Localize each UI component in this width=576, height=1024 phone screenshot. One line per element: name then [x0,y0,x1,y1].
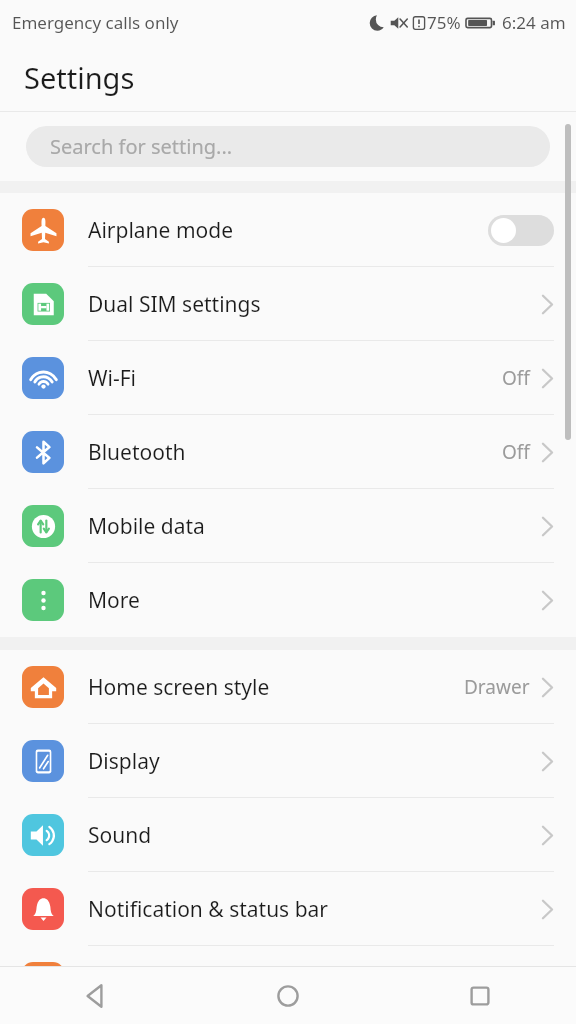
button[interactable]: Back [0,967,192,1024]
button[interactable]: Apps [0,946,576,1020]
staticText: Sound [88,821,541,850]
staticText: Emergency calls only [12,11,179,34]
staticText: Airplane mode [88,216,488,245]
button[interactable]: Home [192,967,384,1024]
button[interactable]: Dual SIM settings [0,267,576,341]
staticText: Wi-Fi [88,364,502,393]
staticText: More [88,586,541,615]
staticText: 6:24 am [502,11,566,34]
staticText: Mobile data [88,512,541,541]
button[interactable]: Mobile data [0,489,576,563]
button[interactable]: Notification & status bar [0,872,576,946]
button[interactable]: Search for setting... [26,126,550,167]
staticText: Dual SIM settings [88,290,541,319]
staticText: Settings [24,58,135,97]
staticText: Drawer [464,674,530,700]
button[interactable]: Bluetooth [0,415,576,489]
button[interactable]: Recent apps [384,967,576,1024]
staticText: Off [502,365,530,391]
button[interactable]: Airplane mode [0,193,576,267]
button[interactable]: Display [0,724,576,798]
staticText: Display [88,747,541,776]
button[interactable]: Wi-Fi [0,341,576,415]
staticText: Off [502,439,530,465]
staticText: Home screen style [88,673,464,702]
button[interactable]: Sound [0,798,576,872]
staticText: Bluetooth [88,438,502,467]
staticText: Search for setting... [50,133,233,160]
button[interactable]: Home screen style [0,650,576,724]
staticText: Apps [88,969,541,998]
staticText: Notification & status bar [88,895,541,924]
button[interactable]: More [0,563,576,637]
staticText: 75% [427,11,461,34]
button[interactable]: Airplane mode toggle, off [488,215,554,246]
